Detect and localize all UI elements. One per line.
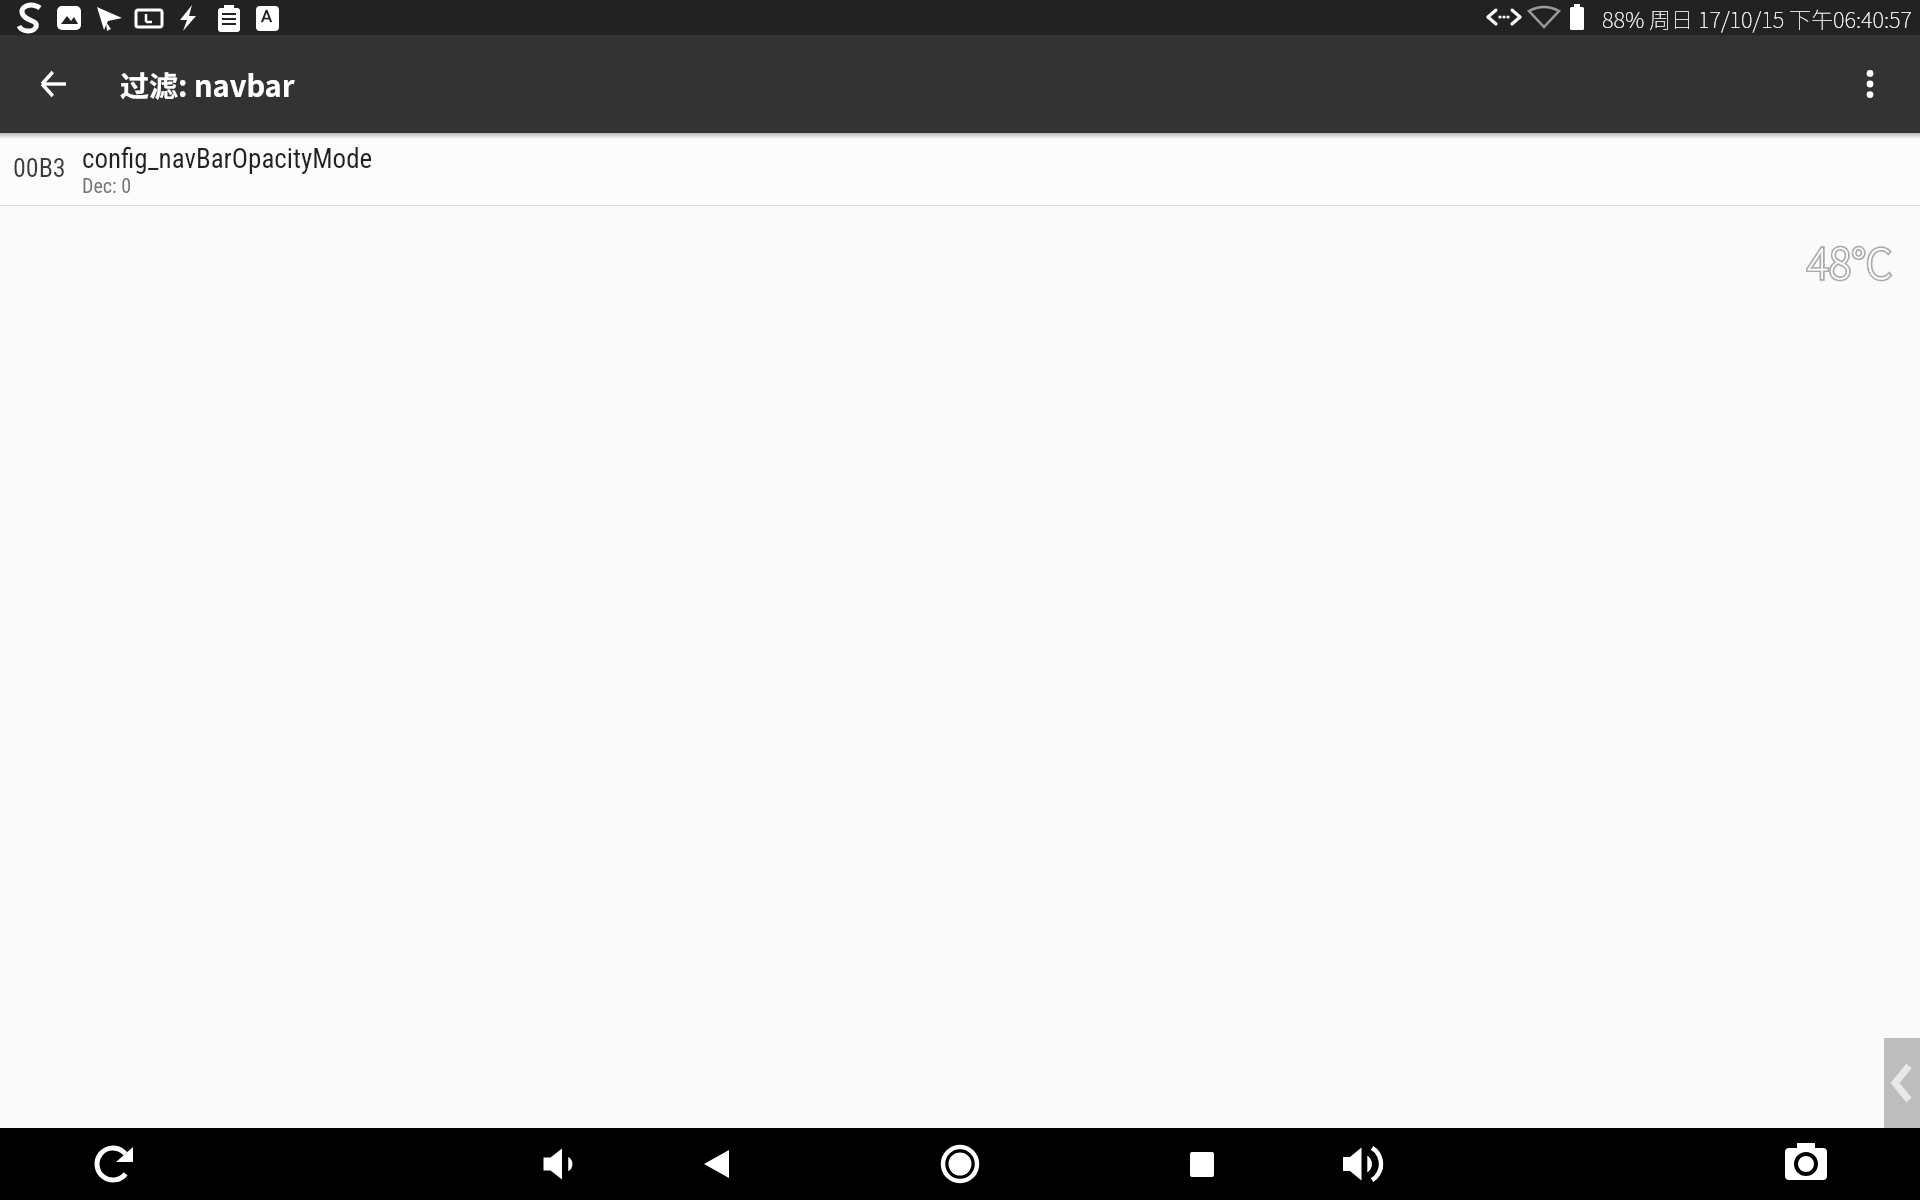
- staticText: A: [261, 6, 273, 26]
- button[interactable]: [1884, 1038, 1920, 1128]
- button[interactable]: [932, 1136, 988, 1192]
- staticText: 88% 周日 17/10/15 下午06:40:57: [1602, 2, 1912, 34]
- staticText: 48℃: [1807, 230, 1893, 291]
- button[interactable]: [1778, 1136, 1834, 1192]
- staticText: config_navBarOpacityMode: [82, 143, 373, 175]
- staticText: Dec: 0: [82, 174, 132, 197]
- button[interactable]: [1850, 64, 1890, 104]
- staticText: 00B3: [13, 153, 66, 183]
- button[interactable]: [85, 1136, 141, 1192]
- staticText: 48℃: [1807, 230, 1893, 291]
- button[interactable]: [1174, 1136, 1230, 1192]
- staticText: 过滤: navbar: [120, 63, 295, 105]
- button[interactable]: [1332, 1136, 1388, 1192]
- button[interactable]: [31, 61, 77, 107]
- button[interactable]: [688, 1136, 744, 1192]
- button[interactable]: [529, 1136, 585, 1192]
- button[interactable]: 00B3: [0, 133, 1920, 206]
